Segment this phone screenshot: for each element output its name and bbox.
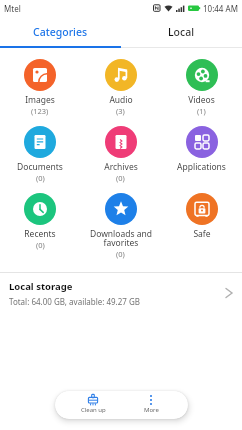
button[interactable]: Audio — [80, 59, 161, 126]
button[interactable]: Archives — [80, 126, 161, 193]
button[interactable]: Recents — [0, 193, 80, 260]
staticText: Safe — [193, 228, 211, 240]
staticText: Mtel — [4, 3, 21, 14]
staticText: Documents — [17, 161, 63, 173]
staticText: (0) — [36, 173, 45, 183]
staticText: (123) — [31, 106, 49, 116]
staticText: (3) — [116, 106, 125, 116]
button[interactable]: More — [122, 391, 180, 419]
staticText: Local — [168, 25, 195, 39]
staticText: Downloads and favorites — [90, 228, 152, 249]
button[interactable]: Local storage — [0, 273, 242, 313]
staticText: Videos — [188, 94, 215, 106]
staticText: Images — [25, 94, 55, 106]
button[interactable]: Categories — [0, 16, 121, 48]
button[interactable]: Safe — [161, 193, 242, 260]
staticText: (0) — [116, 173, 125, 183]
staticText: Local storage — [9, 280, 73, 293]
staticText: 10:44 AM — [203, 3, 238, 14]
staticText: (0) — [116, 249, 125, 259]
staticText: (0) — [36, 240, 45, 250]
staticText: Applications — [177, 161, 226, 173]
button[interactable]: Clean up — [64, 391, 122, 419]
staticText: Categories — [33, 25, 88, 39]
staticText: Total: 64.00 GB, available: 49.27 GB — [9, 296, 141, 307]
button[interactable]: Downloads and favorites — [80, 193, 161, 260]
button[interactable]: Images — [0, 59, 80, 126]
button[interactable]: Videos — [161, 59, 242, 126]
button[interactable]: Applications — [161, 126, 242, 193]
staticText: Archives — [104, 161, 138, 173]
staticText: Recents — [24, 228, 56, 240]
button[interactable]: Local — [121, 16, 242, 48]
staticText: More — [144, 406, 159, 414]
staticText: Audio — [109, 94, 133, 106]
staticText: (1) — [197, 106, 206, 116]
button[interactable]: Documents — [0, 126, 80, 193]
staticText: Clean up — [81, 406, 106, 414]
